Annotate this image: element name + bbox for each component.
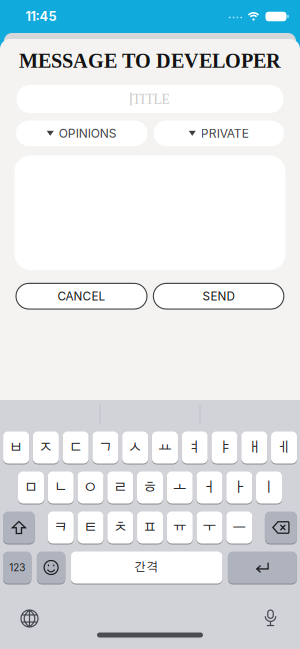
- button[interactable]: ㅗ: [167, 471, 193, 504]
- button[interactable]: ㅁ: [18, 471, 44, 504]
- staticText: TITLE: [132, 91, 169, 107]
- staticText: ㅍ: [143, 520, 157, 534]
- button[interactable]: ㅜ: [197, 511, 223, 544]
- staticText: ㅋ: [54, 520, 68, 534]
- staticText: 123: [9, 561, 25, 574]
- button[interactable]: SEND: [153, 283, 284, 309]
- button[interactable]: ㅎ: [137, 471, 163, 504]
- button[interactable]: Shift: [3, 511, 35, 544]
- button[interactable]: ㅣ: [256, 471, 282, 504]
- button[interactable]: Return: [228, 551, 297, 584]
- button[interactable]: ㅇ: [77, 471, 103, 504]
- button[interactable]: OPINIONS: [16, 121, 147, 146]
- button[interactable]: ㅊ: [107, 511, 133, 544]
- staticText: ㅁ: [24, 480, 38, 494]
- staticText: ㅌ: [83, 520, 97, 534]
- button[interactable]: ㄷ: [63, 431, 89, 464]
- staticText: CANCEL: [57, 289, 105, 303]
- button[interactable]: ㄴ: [48, 471, 74, 504]
- button[interactable]: Next keyboard: [21, 610, 38, 627]
- staticText: ㅂ: [9, 440, 23, 454]
- button[interactable]: ㅍ: [137, 511, 163, 544]
- staticText: PRIVATE: [201, 126, 249, 140]
- staticText: ㄹ: [113, 480, 127, 494]
- button[interactable]: ㅓ: [196, 471, 222, 504]
- button[interactable]: ㅑ: [211, 431, 237, 464]
- staticText: ㅊ: [113, 520, 127, 534]
- staticText: ㅇ: [83, 480, 97, 494]
- button[interactable]: ㅡ: [226, 511, 252, 544]
- button[interactable]: CANCEL: [16, 283, 147, 309]
- staticText: ㅓ: [202, 480, 216, 494]
- staticText: ㅐ: [247, 440, 261, 454]
- button[interactable]: ㅠ: [167, 511, 193, 544]
- button[interactable]: ㅐ: [241, 431, 267, 464]
- staticText: ㅔ: [277, 440, 291, 454]
- button[interactable]: 123: [3, 551, 31, 584]
- button[interactable]: ㅂ: [3, 431, 29, 464]
- staticText: ㅠ: [173, 520, 187, 534]
- staticText: SEND: [203, 289, 235, 303]
- staticText: ㅗ: [173, 480, 187, 494]
- staticText: MESSAGE TO DEVELOPER: [19, 50, 281, 72]
- button[interactable]: ㅅ: [122, 431, 148, 464]
- staticText: ㅈ: [39, 440, 53, 454]
- button[interactable]: Dictation: [264, 609, 277, 627]
- staticText: ㅅ: [128, 440, 142, 454]
- button[interactable]: ㅕ: [182, 431, 208, 464]
- button[interactable]: Delete: [265, 511, 297, 544]
- staticText: ㅛ: [158, 440, 172, 454]
- button[interactable]: ㅏ: [226, 471, 252, 504]
- button[interactable]: ㅈ: [33, 431, 59, 464]
- staticText: 간격: [135, 561, 159, 573]
- button[interactable]: ㅔ: [271, 431, 297, 464]
- button[interactable]: Title: [16, 85, 283, 113]
- staticText: ㅏ: [232, 480, 246, 494]
- button[interactable]: ㅌ: [77, 511, 103, 544]
- staticText: ㅣ: [262, 480, 276, 494]
- button[interactable]: Emoji: [37, 551, 65, 584]
- button[interactable]: ㅛ: [152, 431, 178, 464]
- button[interactable]: ㄱ: [92, 431, 118, 464]
- staticText: ㄱ: [98, 440, 112, 454]
- staticText: ㄷ: [69, 440, 83, 454]
- staticText: ㅑ: [217, 440, 231, 454]
- staticText: ㅕ: [188, 440, 202, 454]
- staticText: 11:45: [25, 9, 56, 24]
- staticText: ㅜ: [203, 520, 217, 534]
- button[interactable]: 간격: [71, 551, 222, 584]
- button[interactable]: ㄹ: [107, 471, 133, 504]
- staticText: OPINIONS: [59, 126, 117, 140]
- button[interactable]: PRIVATE: [153, 121, 284, 146]
- staticText: ㅡ: [232, 520, 246, 534]
- button[interactable]: ㅋ: [48, 511, 74, 544]
- staticText: ㅎ: [143, 480, 157, 494]
- staticText: ㄴ: [54, 480, 68, 494]
